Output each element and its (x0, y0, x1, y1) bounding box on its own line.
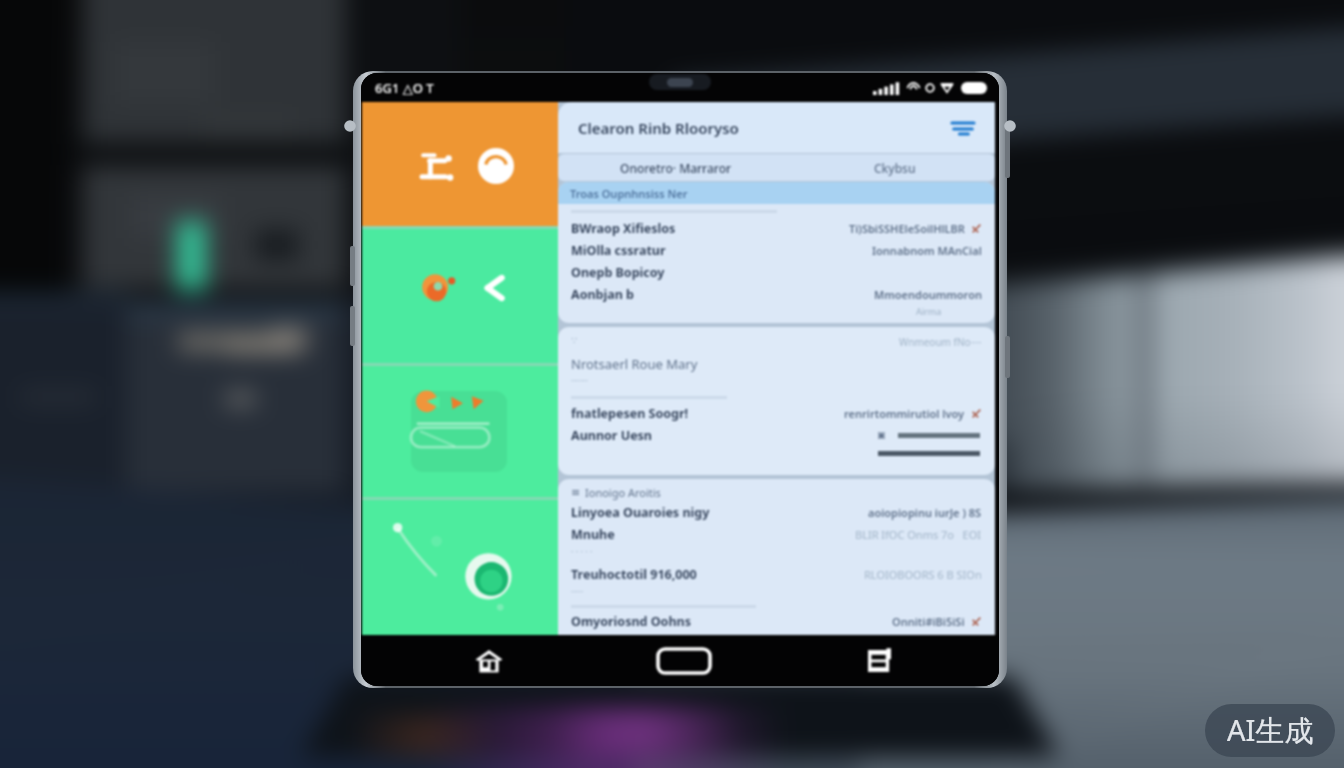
button[interactable] (362, 500, 558, 635)
button[interactable]: Onepb Bopicoy (571, 261, 982, 283)
staticText: ≡ (571, 486, 581, 499)
staticText: Troaѕ Oupnhnsisѕ Ner (570, 186, 688, 201)
button[interactable]: Filter (947, 112, 979, 144)
staticText: Omyoriosnd Oohns (571, 613, 691, 630)
button[interactable]: Troaѕ Oupnhnsisѕ Ner (558, 182, 995, 204)
button[interactable] (362, 366, 558, 497)
staticText: ▣ (877, 430, 886, 440)
staticText: Nrotsaerl Roue Mary (571, 355, 698, 373)
staticText: Ionnabnom MAnCial (872, 243, 982, 258)
button[interactable]: Recents (652, 641, 716, 681)
button[interactable]: Treuhoctotil 916,000 (571, 563, 982, 585)
button[interactable]: Home (461, 639, 517, 683)
button[interactable]: BWraop Xifieslos (571, 217, 982, 239)
staticText: aoiopiopinu iurJe ) 8S (868, 505, 982, 520)
staticText: Ionoigo Aroitis (585, 485, 661, 500)
button[interactable]: fnatlepesen Soogr! (571, 402, 982, 424)
staticText: Linyoea Ouaroies nigy (571, 504, 710, 521)
other: Share (422, 147, 460, 185)
staticText: Mnuhe (571, 526, 615, 543)
button[interactable]: Share (362, 102, 558, 226)
button[interactable]: Back (362, 229, 558, 363)
staticText: AI生成 (1227, 710, 1314, 750)
staticText: Aunnor Uesn (571, 427, 652, 444)
staticText: Onepb Bopicoy (571, 264, 665, 281)
staticText: RLOIOBOORS 6 B SIOn (864, 567, 982, 582)
staticText: renrirtommirutiol lvoy (844, 406, 965, 421)
staticText: fnatlepesen Soogr! (571, 405, 689, 422)
button[interactable]: Mnuhe (571, 523, 982, 545)
button[interactable]: Omyoriosnd Oohns (571, 610, 982, 632)
button[interactable]: Linyoea Ouaroies nigy (571, 501, 982, 523)
other: Back (478, 271, 512, 305)
staticText: 6G1 △O T (375, 79, 434, 97)
staticText: Airma (916, 305, 942, 317)
button[interactable]: Aonbjan b (571, 283, 982, 305)
staticText: BLIR IfOC Onms 7o EOI (855, 527, 982, 542)
staticText: ····· (571, 585, 584, 597)
other: Audio (478, 148, 514, 184)
staticText: Mmoendoummoron (874, 287, 982, 302)
staticText: ······· (571, 374, 588, 386)
staticText: Ckybsu (874, 160, 916, 176)
staticText: Wnmeoum fNo···· (899, 335, 982, 349)
staticText: Clearon Rinb Rlooryѕo (578, 118, 739, 138)
button[interactable]: Split screen (855, 639, 903, 683)
button[interactable]: MiOlla cssratur (571, 239, 982, 261)
button[interactable]: Onoretro· Marraror (558, 154, 794, 181)
staticText: Onniti#iBi5iSi (892, 614, 965, 629)
staticText: Ti)SbiSSHEleSoilHlLBR (849, 221, 965, 236)
staticText: Aonbjan b (571, 286, 634, 303)
button[interactable]: Ckybsu (794, 154, 995, 181)
staticText: BWraop Xifieslos (571, 220, 676, 237)
staticText: Onoretro· Marraror (620, 160, 732, 176)
staticText: MiOlla cssratur (571, 242, 666, 259)
staticText: Treuhoctotil 916,000 (571, 566, 697, 583)
